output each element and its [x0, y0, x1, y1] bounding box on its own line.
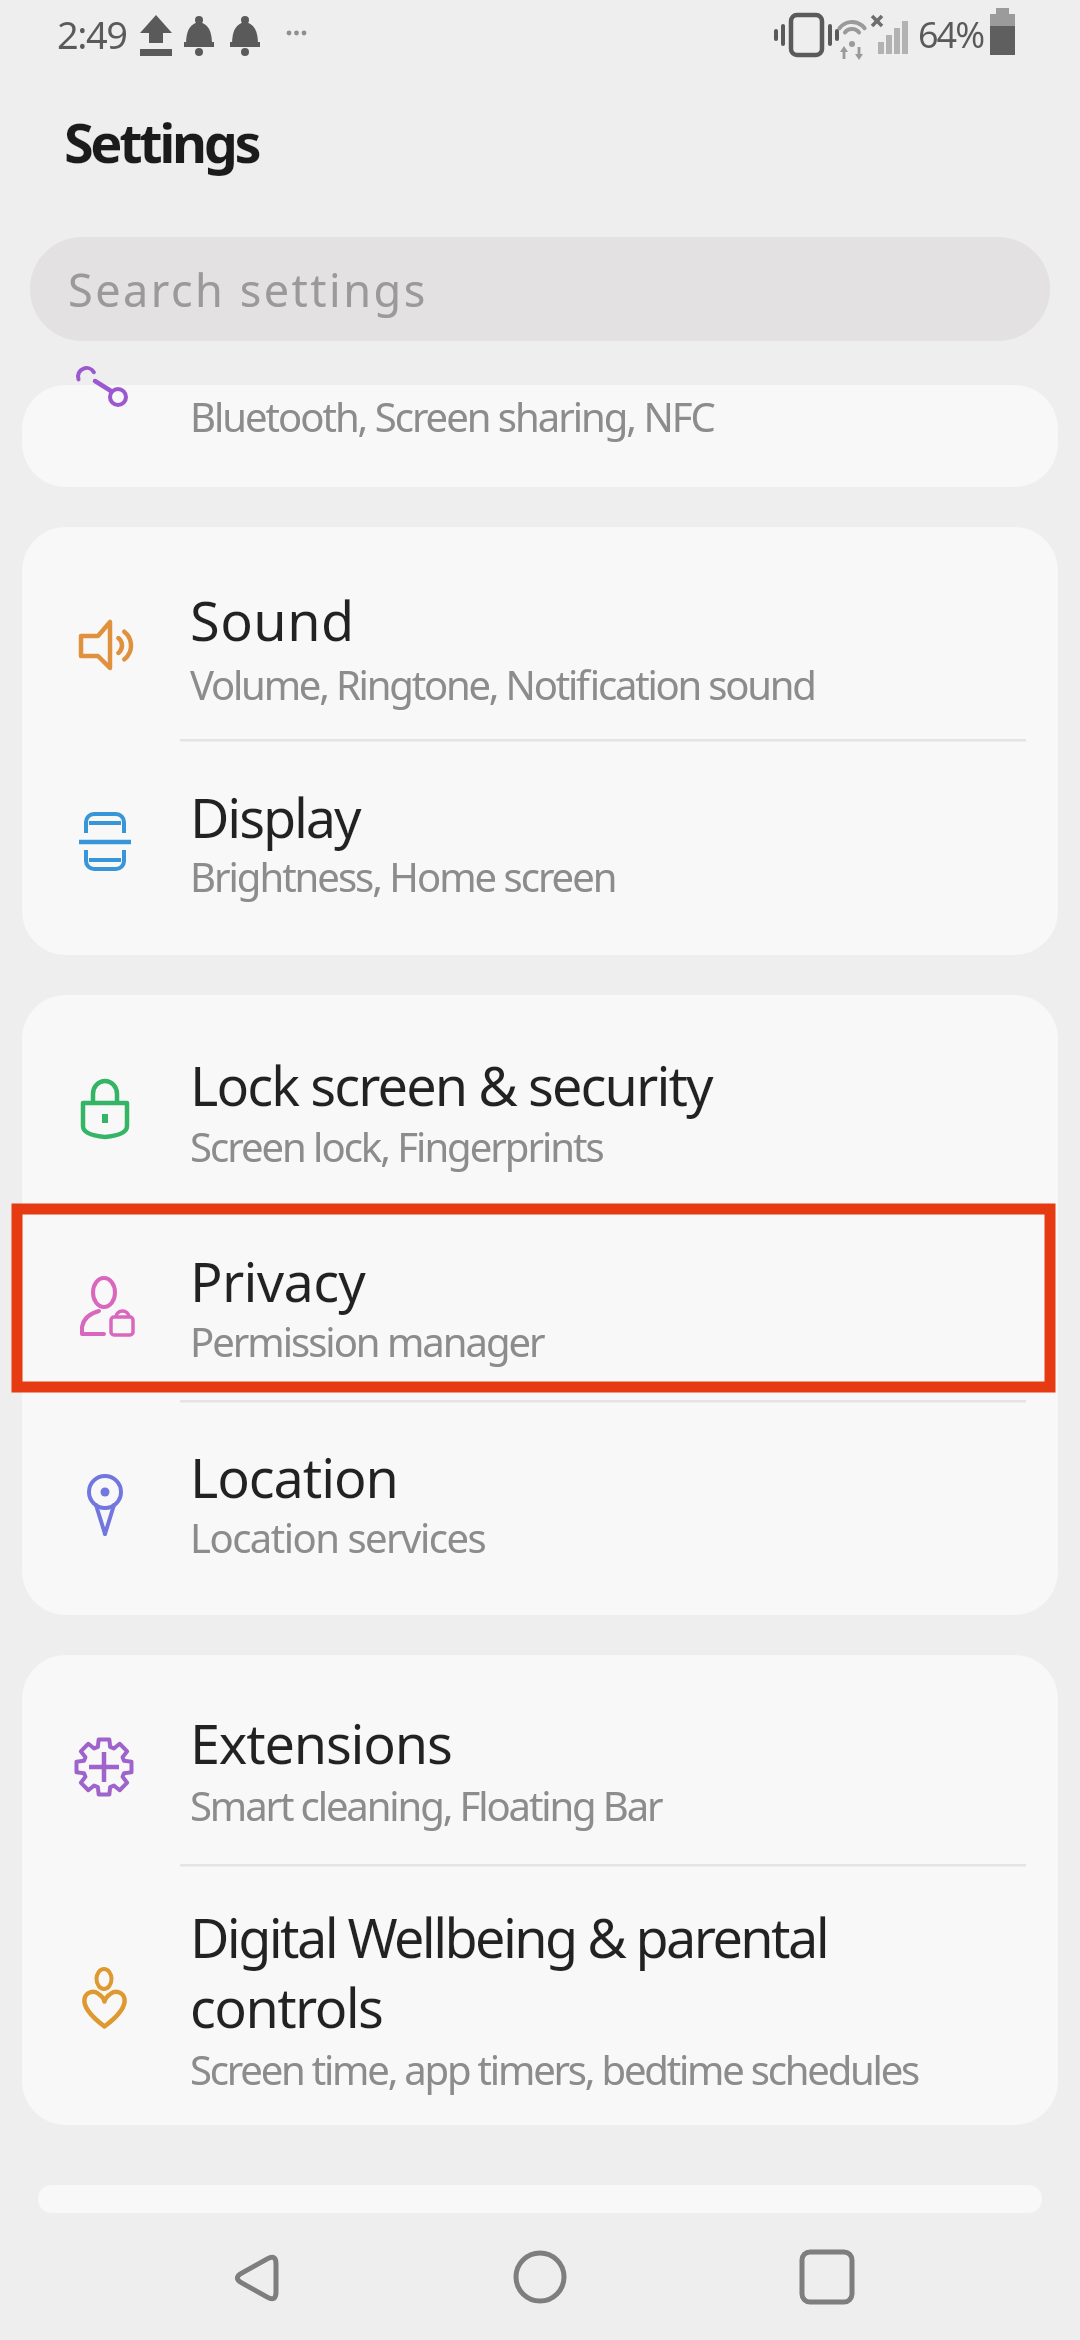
staticText: Privacy	[190, 1244, 366, 1318]
staticText: Location	[190, 1440, 398, 1514]
staticText: Smart cleaning, Floating Bar	[190, 1778, 662, 1832]
button[interactable]	[779, 2229, 875, 2325]
staticText: Screen lock, Fingerprints	[190, 1119, 603, 1173]
button[interactable]	[22, 1398, 1058, 1615]
button[interactable]	[492, 2229, 588, 2325]
staticText: Location services	[190, 1510, 486, 1564]
staticText: 2:49	[57, 8, 127, 60]
staticText: Brightness, Home screen	[190, 849, 616, 903]
staticText: controls	[190, 1970, 383, 2044]
button[interactable]	[22, 1865, 1058, 2125]
button[interactable]: Search settings	[30, 237, 1050, 341]
staticText: Sound	[190, 583, 355, 657]
staticText: Display	[190, 780, 360, 854]
staticText: 64%	[918, 10, 984, 59]
button[interactable]	[22, 385, 1058, 487]
staticText: Lock screen & security	[190, 1048, 712, 1122]
staticText: Permission manager	[190, 1314, 544, 1368]
button[interactable]	[22, 740, 1058, 955]
staticText: Bluetooth, Screen sharing, NFC	[190, 389, 714, 443]
button[interactable]	[22, 1655, 1058, 1865]
button[interactable]	[22, 995, 1058, 1200]
staticText: Volume, Ringtone, Notification sound	[190, 657, 815, 711]
staticText: Screen time, app timers, bedtime schedul…	[190, 2042, 918, 2096]
staticText: Search settings	[68, 259, 428, 320]
staticText: Settings	[64, 105, 259, 179]
button[interactable]	[22, 527, 1058, 740]
button[interactable]	[22, 1200, 1058, 1398]
staticText: Digital Wellbeing & parental	[190, 1900, 827, 1974]
button[interactable]	[209, 2229, 305, 2325]
staticText: Extensions	[190, 1706, 452, 1780]
